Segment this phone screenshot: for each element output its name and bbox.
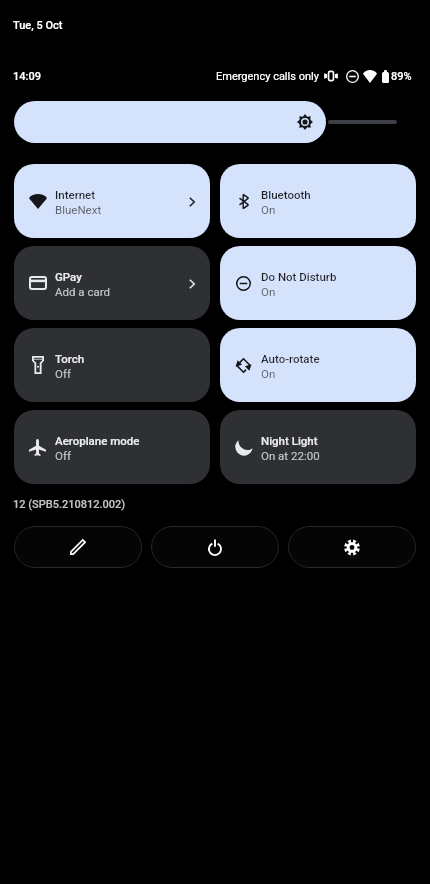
staticText: Off (55, 367, 71, 380)
staticText: Add a card (55, 285, 110, 298)
staticText: Tue, 5 Oct (13, 19, 63, 32)
staticText: Internet (55, 188, 96, 201)
staticText: 12 (SPB5.210812.002) (13, 498, 126, 511)
button[interactable]: Night Light (220, 410, 416, 484)
staticText: On (261, 367, 276, 380)
button[interactable]: Brightness (14, 101, 326, 143)
staticText: BlueNext (55, 203, 102, 216)
staticText: On (261, 203, 276, 216)
button[interactable]: Bluetooth (220, 164, 416, 238)
staticText: On at 22:00 (261, 449, 320, 462)
staticText: Off (55, 449, 71, 462)
button[interactable]: Edit tiles (14, 526, 142, 568)
staticText: 89% (391, 70, 412, 83)
button[interactable]: Aeroplane mode (14, 410, 210, 484)
button[interactable]: Power (151, 526, 279, 568)
button[interactable]: Settings (288, 526, 416, 568)
button[interactable]: Do Not Disturb (220, 246, 416, 320)
staticText: On (261, 285, 276, 298)
button[interactable]: Internet (14, 164, 210, 238)
staticText: Torch (55, 352, 85, 365)
staticText: GPay (55, 270, 82, 283)
staticText: Aeroplane mode (55, 434, 140, 447)
staticText: Emergency calls only (216, 70, 319, 83)
staticText: 14:09 (13, 70, 41, 83)
button[interactable]: Auto-rotate (220, 328, 416, 402)
staticText: Auto-rotate (261, 352, 320, 365)
staticText: Do Not Disturb (261, 270, 337, 283)
button[interactable]: GPay (14, 246, 210, 320)
button[interactable]: Torch (14, 328, 210, 402)
staticText: Night Light (261, 434, 318, 447)
staticText: Bluetooth (261, 188, 311, 201)
